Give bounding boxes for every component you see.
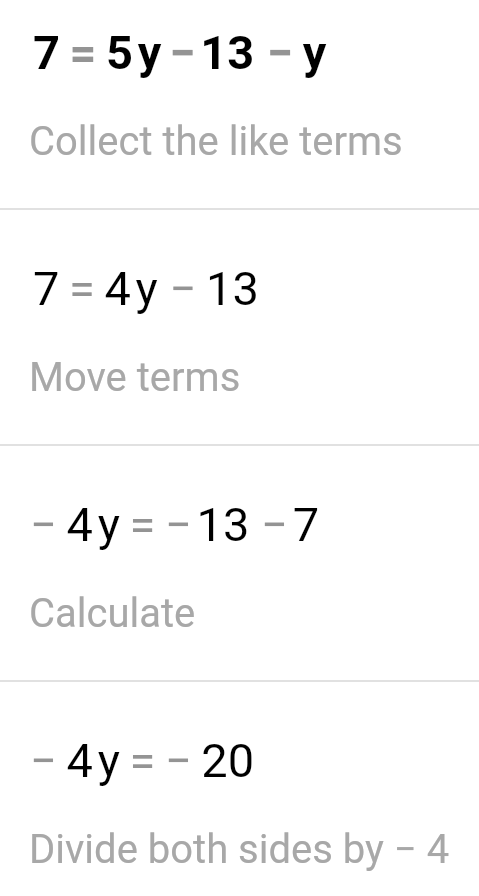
button[interactable]: 7 = 4 y − 13	[0, 210, 479, 444]
staticText: 7 = 4 y − 13	[33, 261, 259, 316]
button[interactable]: − 4 y = − 13 − 7	[0, 446, 479, 680]
staticText: Collect the like terms	[29, 118, 403, 165]
button[interactable]: 7 = 5 y − 13 − y	[0, 0, 479, 208]
staticText: − 4 y = − 13 − 7	[30, 497, 320, 552]
staticText: Calculate	[29, 590, 196, 637]
staticText: − 4 y = − 20	[30, 733, 255, 788]
staticText: Move terms	[29, 354, 241, 401]
staticText: Divide both sides by − 4	[29, 826, 450, 873]
button[interactable]: − 4 y = − 20	[0, 682, 479, 896]
staticText: 7 = 5 y − 13 − y	[33, 25, 327, 80]
